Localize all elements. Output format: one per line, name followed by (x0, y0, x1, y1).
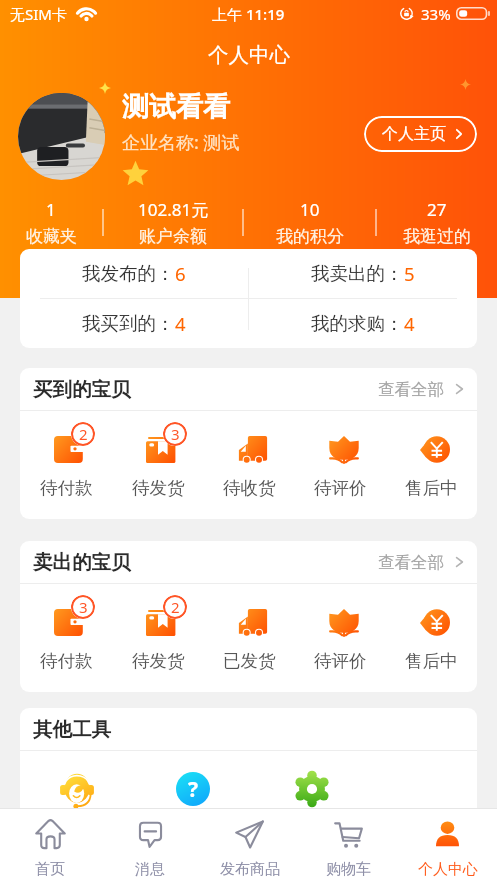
button[interactable]: 买到的宝贝 (20, 368, 477, 410)
staticText: 上午 11:19 (212, 4, 285, 24)
button[interactable]: 首页 (0, 809, 100, 883)
staticText: 待发货 (132, 650, 185, 672)
staticText: 售后中 (405, 650, 458, 672)
staticText: 售后中 (405, 477, 458, 499)
button[interactable]: 10 (244, 195, 375, 249)
button[interactable]: 待评价 (295, 436, 386, 499)
staticText: 33% (421, 4, 451, 24)
button[interactable]: 27 (377, 195, 497, 249)
staticText: 10 (300, 198, 320, 221)
staticText: 卖出的宝贝 (33, 550, 131, 575)
button[interactable]: 个人中心 (398, 809, 497, 883)
button[interactable]: 帮助中心 (133, 755, 252, 827)
button[interactable]: 个人主页 (364, 116, 477, 152)
staticText: 待付款 (40, 477, 93, 499)
button[interactable]: 我卖出的： (248, 249, 477, 298)
button[interactable]: 设置 (252, 755, 371, 827)
staticText: 企业名称: 测试 (122, 130, 240, 155)
staticText: 查看全部 (378, 379, 444, 400)
staticText: 待评价 (314, 477, 367, 499)
staticText: 账户余额 (139, 226, 207, 247)
button[interactable]: 102.81元 (104, 195, 242, 249)
staticText: 5 (404, 261, 415, 286)
staticText: 测试看看 (122, 90, 230, 124)
staticText: 个人中心 (208, 42, 290, 68)
staticText: 个人中心 (418, 860, 478, 877)
button[interactable]: 卖出的宝贝 (20, 541, 477, 583)
button[interactable]: 消息 (100, 809, 200, 883)
staticText: 我逛过的 (403, 226, 471, 247)
staticText: 已发货 (223, 650, 276, 672)
staticText: 我的积分 (276, 226, 344, 247)
button[interactable]: 2 (20, 436, 112, 499)
button[interactable]: 售后中 (386, 609, 477, 672)
staticText: 3 (79, 597, 88, 617)
staticText: 待付款 (40, 650, 93, 672)
staticText: 查看全部 (378, 552, 444, 573)
staticText: 27 (427, 198, 447, 221)
staticText: 购物车 (326, 860, 371, 877)
staticText: 2 (79, 424, 88, 444)
staticText: 收藏夹 (26, 226, 77, 247)
button[interactable]: 3 (112, 436, 204, 499)
staticText: ? (188, 775, 199, 804)
staticText: 我卖出的： (311, 262, 404, 285)
staticText: 发布商品 (220, 860, 280, 877)
button[interactable]: 1 (0, 195, 102, 249)
staticText: 待发货 (132, 477, 185, 499)
staticText: 我买到的： (82, 312, 175, 335)
button[interactable]: 头像 (18, 93, 105, 180)
staticText: 我发布的： (82, 262, 175, 285)
button[interactable]: 购物车 (299, 809, 398, 883)
staticText: 待收货 (223, 477, 276, 499)
staticText: 无SIM卡 (10, 4, 67, 24)
staticText: 我的求购： (311, 312, 404, 335)
staticText: 消息 (135, 860, 165, 877)
staticText: 102.81元 (138, 198, 209, 221)
button[interactable]: 我买到的： (20, 299, 248, 348)
button[interactable]: 待收货 (204, 436, 295, 499)
button[interactable]: 2 (112, 609, 204, 672)
staticText: 4 (404, 311, 415, 336)
button[interactable]: 发布商品 (200, 809, 299, 883)
button[interactable]: 我的求购： (248, 299, 477, 348)
staticText: 6 (175, 261, 186, 286)
staticText: 首页 (35, 860, 65, 877)
button[interactable]: 售后中 (386, 436, 477, 499)
button[interactable]: 在线客服 (20, 755, 133, 827)
staticText: 3 (171, 424, 180, 444)
staticText: 1 (46, 198, 56, 221)
button[interactable]: 我发布的： (20, 249, 248, 298)
staticText: 4 (175, 311, 186, 336)
staticText: 2 (171, 597, 180, 617)
staticText: 其他工具 (33, 717, 111, 742)
staticText: 个人主页 (382, 124, 446, 144)
staticText: 买到的宝贝 (33, 377, 131, 402)
button[interactable]: 已发货 (204, 609, 295, 672)
staticText: 待评价 (314, 650, 367, 672)
button[interactable]: 3 (20, 609, 112, 672)
button[interactable]: 待评价 (295, 609, 386, 672)
